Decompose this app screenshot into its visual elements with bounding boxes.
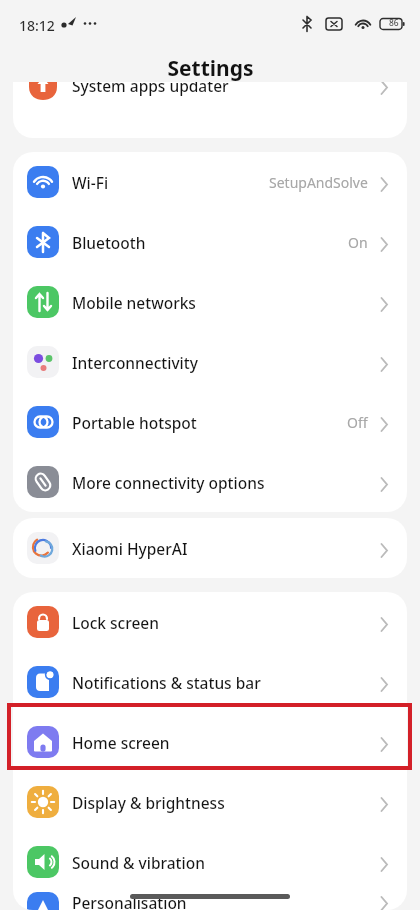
staticText: Settings [167,54,254,83]
staticText: Notifications & status bar [72,672,261,693]
button[interactable]: Interconnectivity [13,332,407,392]
button[interactable]: Wi-Fi [13,152,407,212]
button[interactable]: Lock screen [13,592,407,652]
staticText: Wi-Fi [72,172,109,193]
staticText: Sound & vibration [72,852,205,873]
button[interactable]: Display & brightness [13,772,407,832]
staticText: Mobile networks [72,292,196,313]
staticText: Lock screen [72,612,159,633]
staticText: 86 [389,17,399,29]
button[interactable]: Mobile networks [13,272,407,332]
staticText: Xiaomi HyperAI [72,538,188,559]
button[interactable]: Notifications & status bar [13,652,407,712]
button[interactable]: More connectivity options [13,452,407,512]
staticText: Personalisation [72,892,187,910]
button[interactable]: Sound & vibration [13,832,407,892]
staticText: On [348,233,368,252]
staticText: Home screen [72,732,170,753]
button[interactable]: System apps updater [13,82,407,113]
button[interactable]: Portable hotspot [13,392,407,452]
button[interactable]: Home screen [13,712,407,772]
staticText: Portable hotspot [72,412,197,433]
button[interactable]: Xiaomi HyperAI [13,518,407,578]
staticText: SetupAndSolve [269,173,368,192]
button[interactable]: Personalisation [13,892,407,910]
staticText: More connectivity options [72,472,265,493]
button[interactable]: Bluetooth [13,212,407,272]
staticText: System apps updater [72,82,229,96]
staticText: Off [347,413,368,432]
staticText: 18:12 [19,16,55,35]
staticText: Bluetooth [72,232,146,253]
staticText: Interconnectivity [72,352,198,373]
staticText: Display & brightness [72,792,225,813]
